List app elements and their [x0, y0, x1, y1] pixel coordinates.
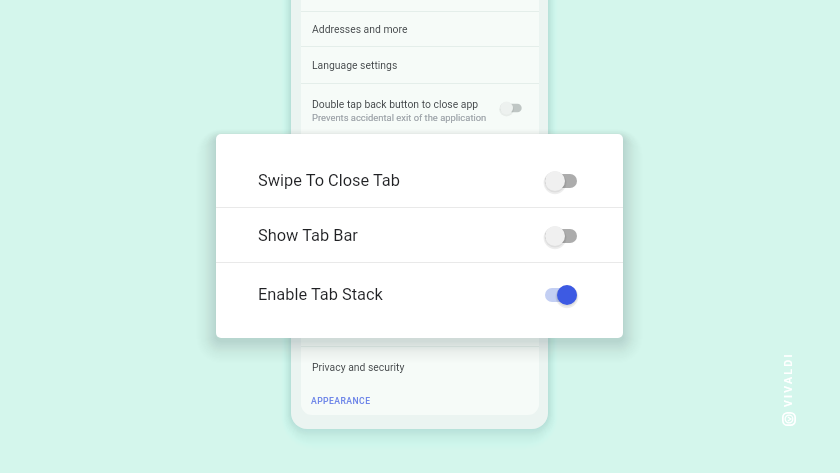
staticText: Addresses and more [312, 23, 408, 35]
button[interactable]: Show Tab Bar [216, 208, 623, 262]
staticText: Swipe To Close Tab [258, 171, 400, 190]
other: Vivaldi [782, 412, 796, 426]
button[interactable]: Swipe To Close Tab [216, 134, 623, 207]
staticText: Double tap back button to close app [312, 98, 479, 110]
button[interactable]: Double tap back button to close app, off [500, 99, 526, 117]
staticText: Privacy and security [312, 361, 405, 373]
button[interactable]: Switch, on [545, 284, 577, 306]
button[interactable]: Switch, off [545, 170, 577, 192]
staticText: Language settings [312, 59, 398, 71]
staticText: Prevents accidental exit of the applicat… [312, 112, 487, 123]
button[interactable]: Addresses and more [301, 16, 539, 42]
staticText: APPEARANCE [311, 396, 371, 406]
button[interactable]: Privacy and security [301, 354, 539, 380]
button[interactable]: APPEARANCE [301, 390, 539, 412]
staticText: Enable Tab Stack [258, 285, 383, 304]
button[interactable]: Language settings [301, 52, 539, 78]
button[interactable]: Double tap back button to close app [301, 91, 539, 117]
button[interactable]: Enable Tab Stack [216, 263, 623, 338]
staticText: Show Tab Bar [258, 226, 358, 245]
button[interactable]: Switch, off [545, 225, 577, 247]
staticText: VIVALDI [782, 352, 794, 407]
